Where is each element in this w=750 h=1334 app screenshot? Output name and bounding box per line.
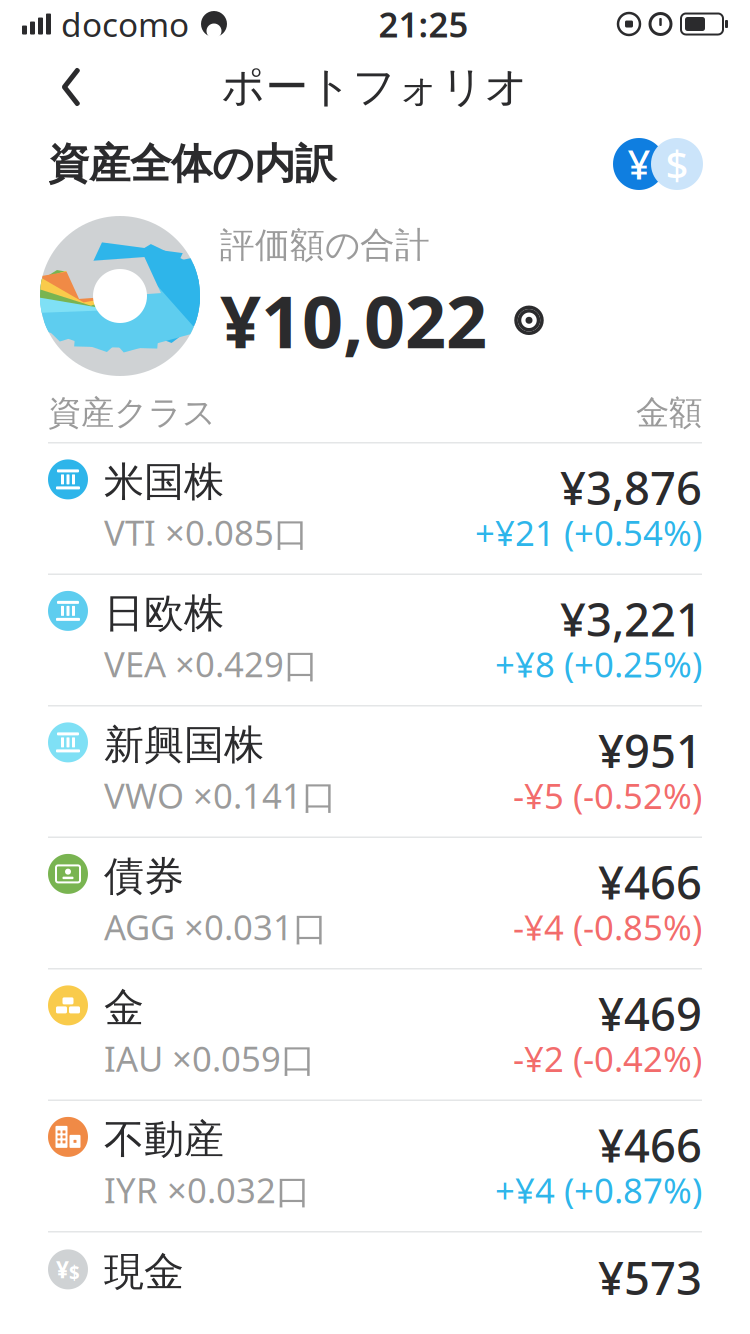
- staticText: ¥466: [598, 1115, 702, 1175]
- button[interactable]: 米国株: [0, 443, 750, 573]
- staticText: VTI ×0.085口: [104, 509, 309, 556]
- staticText: 金: [104, 983, 144, 1032]
- button[interactable]: ¥: [0, 1232, 750, 1322]
- staticText: 現金: [104, 1247, 184, 1296]
- staticText: -¥2 (-0.42%): [513, 1035, 702, 1081]
- staticText: +¥21 (+0.54%): [475, 509, 702, 555]
- staticText: ¥3,221: [560, 589, 702, 649]
- staticText: AGG ×0.031口: [104, 904, 328, 950]
- staticText: VEA ×0.429口: [104, 641, 319, 687]
- staticText: 21:25: [378, 1, 468, 47]
- staticText: -¥4 (-0.85%): [513, 904, 702, 950]
- staticText: ポートフォリオ: [221, 61, 528, 113]
- staticText: 資産クラス: [48, 392, 216, 433]
- staticText: +¥8 (+0.25%): [495, 641, 702, 687]
- staticText: -¥5 (-0.52%): [513, 772, 702, 818]
- staticText: ¥469: [598, 983, 702, 1044]
- button[interactable]: 不動産: [0, 1101, 750, 1231]
- button[interactable]: 債券: [0, 838, 750, 968]
- staticText: $: [665, 137, 688, 190]
- staticText: ¥573: [598, 1247, 702, 1308]
- staticText: 不動産: [104, 1115, 224, 1164]
- staticText: 新興国株: [104, 720, 264, 769]
- staticText: docomo: [61, 2, 189, 46]
- staticText: ¥: [56, 1254, 69, 1284]
- staticText: $: [69, 1260, 80, 1285]
- staticText: 日欧株: [104, 589, 224, 638]
- button[interactable]: 金額の表示切り替え: [501, 296, 557, 344]
- staticText: IAU ×0.059口: [104, 1035, 316, 1082]
- button[interactable]: 通貨切り替え: [610, 136, 706, 192]
- staticText: ¥10,022: [220, 272, 487, 368]
- staticText: 金額: [636, 392, 702, 433]
- staticText: ¥: [627, 137, 650, 190]
- button[interactable]: 新興国株: [0, 706, 750, 836]
- button[interactable]: 戻る: [36, 52, 106, 122]
- staticText: +¥4 (+0.87%): [495, 1167, 702, 1213]
- staticText: ¥951: [598, 720, 702, 781]
- staticText: VWO ×0.141口: [104, 772, 337, 819]
- staticText: ¥3,876: [560, 457, 702, 518]
- button[interactable]: 金: [0, 969, 750, 1099]
- staticText: 資産全体の内訳: [48, 139, 336, 189]
- staticText: 債券: [104, 852, 184, 901]
- staticText: 評価額の合計: [220, 224, 430, 266]
- button[interactable]: 日欧株: [0, 575, 750, 705]
- staticText: ¥466: [598, 852, 702, 912]
- staticText: 米国株: [104, 457, 224, 506]
- staticText: IYR ×0.032口: [104, 1167, 311, 1213]
